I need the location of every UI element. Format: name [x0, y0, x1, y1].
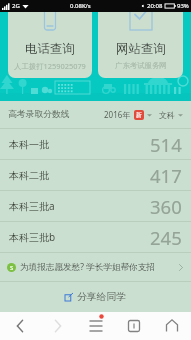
staticText: 文科 [159, 110, 175, 120]
button[interactable]: 2016年 [104, 109, 152, 120]
button[interactable]: Forward [39, 312, 77, 340]
staticText: 广东考试服务网 [115, 61, 167, 70]
staticText: 245 [150, 225, 182, 250]
staticText: 20:08 [147, 2, 163, 10]
staticText: 417 [150, 163, 182, 188]
staticText: 514 [150, 132, 182, 157]
staticText: 本科二批 [9, 169, 49, 182]
button[interactable]: 本科二批 [0, 160, 191, 190]
staticText: 新 [136, 111, 142, 119]
staticText: 电话查询 [25, 41, 75, 57]
button[interactable]: 本科三批b [0, 222, 191, 252]
staticText: 分享给同学 [77, 291, 126, 303]
button[interactable]: 电话查询 [8, 12, 92, 78]
staticText: 2G [12, 2, 20, 10]
button[interactable]: Menu [77, 312, 115, 340]
button[interactable]: 文科 [159, 110, 183, 120]
button[interactable]: Home [153, 312, 191, 340]
staticText: 0.08K/s [70, 2, 91, 10]
staticText: 93% [177, 2, 189, 10]
staticText: 高考录取分数线 [8, 109, 70, 120]
staticText: 人工拨打1259025079 [14, 61, 86, 71]
button[interactable]: 网站查询 [98, 12, 183, 78]
button[interactable]: 本科一批 [0, 129, 191, 159]
staticText: 本科三批b [9, 230, 56, 244]
staticText: S [10, 264, 14, 272]
staticText: 网站查询 [116, 41, 166, 57]
button[interactable]: 本科三批a [0, 191, 191, 221]
button[interactable]: 分享给同学 [65, 291, 126, 303]
button[interactable]: Tabs [115, 312, 153, 340]
staticText: 2016年 [104, 109, 131, 120]
button[interactable]: S [0, 253, 191, 281]
staticText: 本科一批 [9, 138, 49, 151]
staticText: 360 [150, 194, 182, 219]
button[interactable]: Back [0, 312, 39, 340]
staticText: 为填报志愿发愁? 学长学姐帮你支招 [20, 261, 155, 273]
staticText: 本科三批a [9, 199, 55, 213]
